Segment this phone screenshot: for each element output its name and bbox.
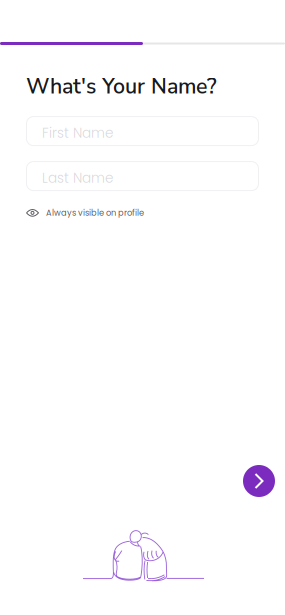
button[interactable]: Continue [243,465,275,497]
staticText: Always visible on profile [46,207,144,219]
staticText: What's Your Name? [26,72,217,101]
staticText: First Name [42,124,113,143]
button[interactable]: First Name [26,116,259,146]
staticText: Last Name [42,169,113,188]
button[interactable]: Last Name [26,161,259,191]
